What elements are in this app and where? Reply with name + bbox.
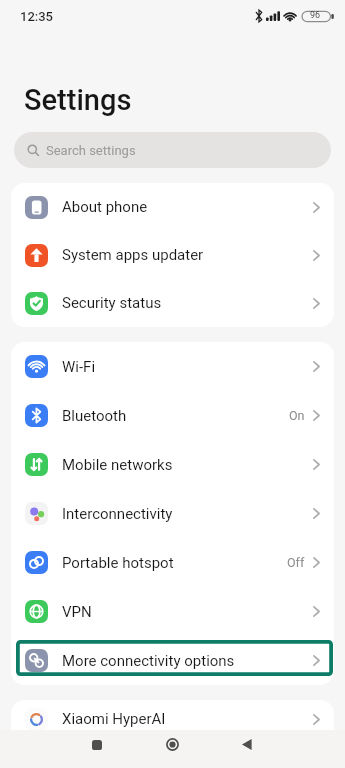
staticText: Portable hotspot [62,554,174,572]
staticText: 12:35 [20,9,54,24]
button[interactable]: Security status [11,279,334,327]
staticText: About phone [62,198,148,216]
button[interactable]: About phone [11,183,334,231]
button[interactable]: Bluetooth [11,391,334,440]
button[interactable]: Search settings [14,132,331,168]
staticText: Wi-Fi [62,358,96,376]
staticText: Settings [24,83,132,117]
button[interactable]: System apps updater [11,231,334,279]
button[interactable]: Interconnectivity [11,489,334,538]
button[interactable] [67,730,127,759]
button[interactable]: VPN [11,587,334,636]
button[interactable] [217,730,277,759]
button[interactable]: Portable hotspot [11,538,334,587]
staticText: Interconnectivity [62,505,173,523]
button[interactable]: Wi-Fi [11,342,334,391]
staticText: System apps updater [62,246,204,264]
staticText: 96 [310,10,321,21]
staticText: VPN [62,603,92,621]
staticText: Bluetooth [62,407,127,425]
staticText: On [289,408,305,423]
button[interactable] [142,730,202,759]
button[interactable]: Mobile networks [11,440,334,489]
button[interactable]: Xiaomi HyperAI [11,700,334,738]
staticText: Mobile networks [62,456,173,474]
button[interactable]: More connectivity options [11,636,334,685]
staticText: Xiaomi HyperAI [62,710,166,728]
staticText: Off [287,555,305,570]
staticText: Security status [62,294,162,312]
staticText: More connectivity options [62,652,235,670]
staticText: Search settings [46,143,136,158]
